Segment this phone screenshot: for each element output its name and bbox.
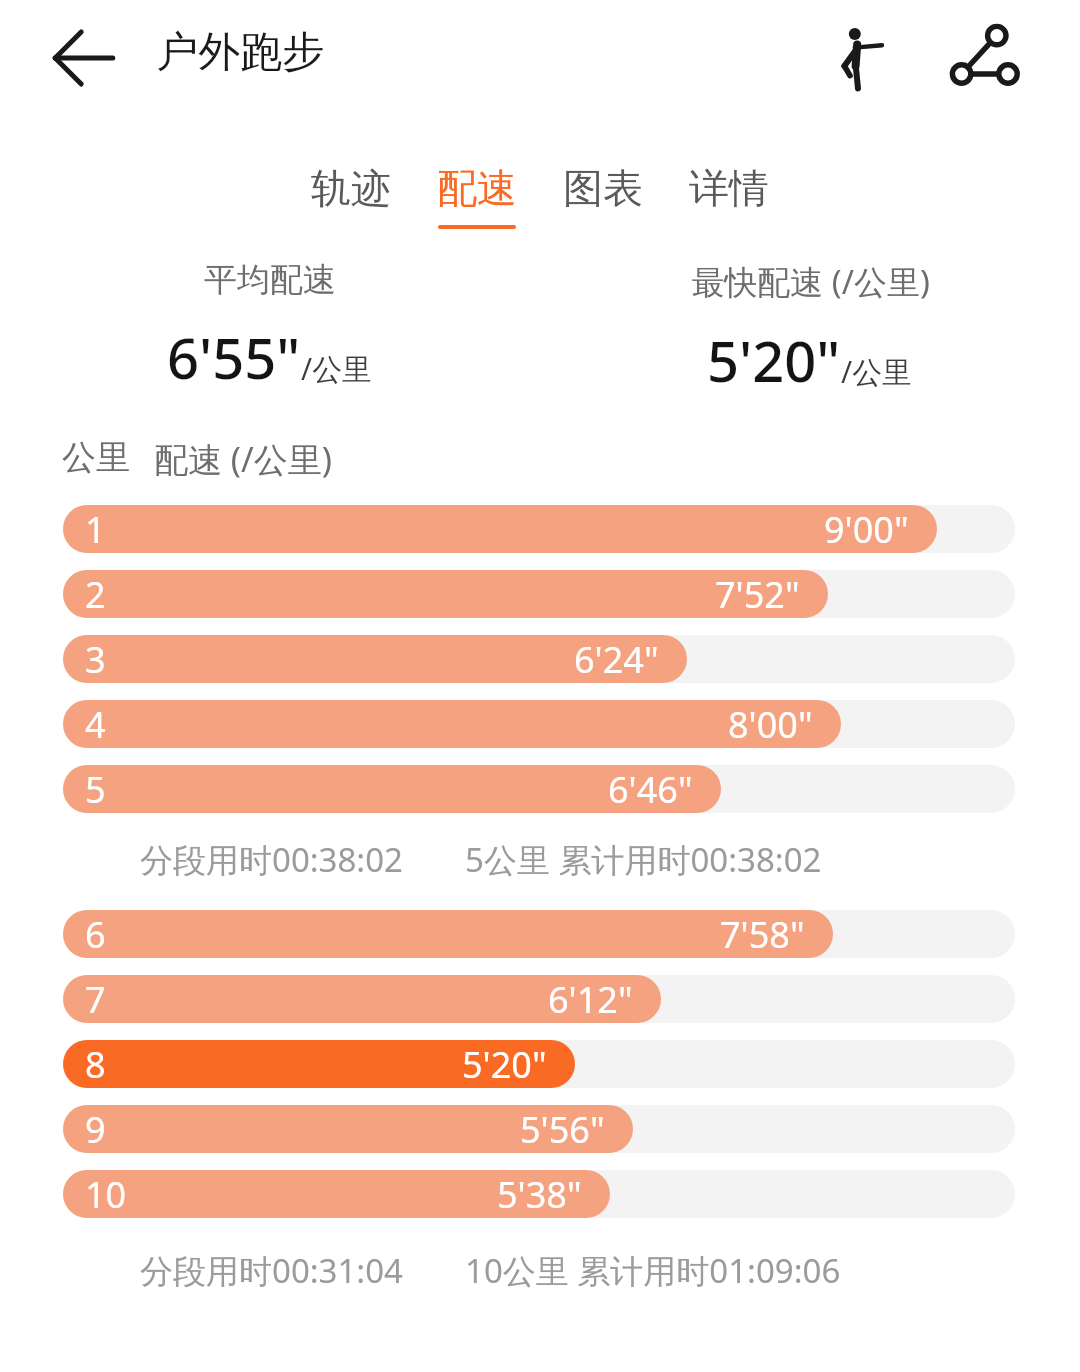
staticText: 最快配速 (/公里) [691, 259, 930, 304]
button[interactable]: 配速 [418, 163, 536, 229]
staticText: 9'00" [824, 505, 909, 553]
staticText: 10公里 累计用时01:09:06 [465, 1248, 841, 1293]
staticText: 平均配速 [204, 259, 336, 301]
button[interactable]: 3 [0, 626, 1080, 691]
staticText: 8 [85, 1040, 106, 1088]
staticText: 8'00" [728, 700, 813, 748]
staticText: 分段用时00:31:04 [140, 1248, 403, 1293]
staticText: 配速 (/公里) [154, 436, 332, 482]
button[interactable]: 9 [0, 1096, 1080, 1161]
staticText: 10 [85, 1170, 127, 1218]
staticText: 5'56" [520, 1105, 605, 1153]
staticText: 详情 [689, 163, 769, 213]
button[interactable]: 10 [0, 1161, 1080, 1226]
staticText: 6'55" [167, 319, 301, 395]
button[interactable]: 8 [0, 1031, 1080, 1096]
staticText: 6'24" [574, 635, 659, 683]
staticText: 3 [85, 635, 106, 683]
staticText: 6'46" [608, 765, 693, 813]
staticText: /公里 [301, 348, 373, 389]
staticText: 6 [85, 910, 106, 958]
staticText: 1 [85, 505, 106, 553]
staticText: 户外跑步 [156, 26, 324, 79]
staticText: 7 [85, 975, 106, 1023]
button[interactable]: 详情 [670, 163, 788, 229]
staticText: 5'20" [462, 1040, 547, 1088]
staticText: 轨迹 [311, 163, 391, 213]
staticText: 分段用时00:38:02 [140, 837, 403, 882]
button[interactable]: 轨迹 [292, 163, 410, 229]
staticText: 5公里 累计用时00:38:02 [465, 837, 822, 882]
staticText: 5 [85, 765, 106, 813]
staticText: 5'20" [707, 322, 841, 398]
button[interactable]: 6 [0, 901, 1080, 966]
staticText: 2 [85, 570, 106, 618]
button[interactable]: 2 [0, 561, 1080, 626]
staticText: 5'38" [497, 1170, 582, 1218]
button[interactable]: 1 [0, 496, 1080, 561]
button[interactable]: 图表 [544, 163, 662, 229]
button[interactable]: 4 [0, 691, 1080, 756]
staticText: 7'52" [715, 570, 800, 618]
staticText: 7'58" [720, 910, 805, 958]
staticText: 公里 [62, 436, 130, 479]
staticText: 配速 [437, 163, 517, 213]
button[interactable]: Back [48, 22, 120, 94]
staticText: 9 [85, 1105, 106, 1153]
staticText: 4 [85, 700, 106, 748]
button[interactable]: Share [944, 18, 1024, 98]
button[interactable]: 7 [0, 966, 1080, 1031]
staticText: 6'12" [548, 975, 633, 1023]
staticText: /公里 [841, 351, 913, 392]
button[interactable]: 5 [0, 756, 1080, 821]
button[interactable]: Running type [818, 18, 898, 98]
staticText: 图表 [563, 163, 643, 213]
